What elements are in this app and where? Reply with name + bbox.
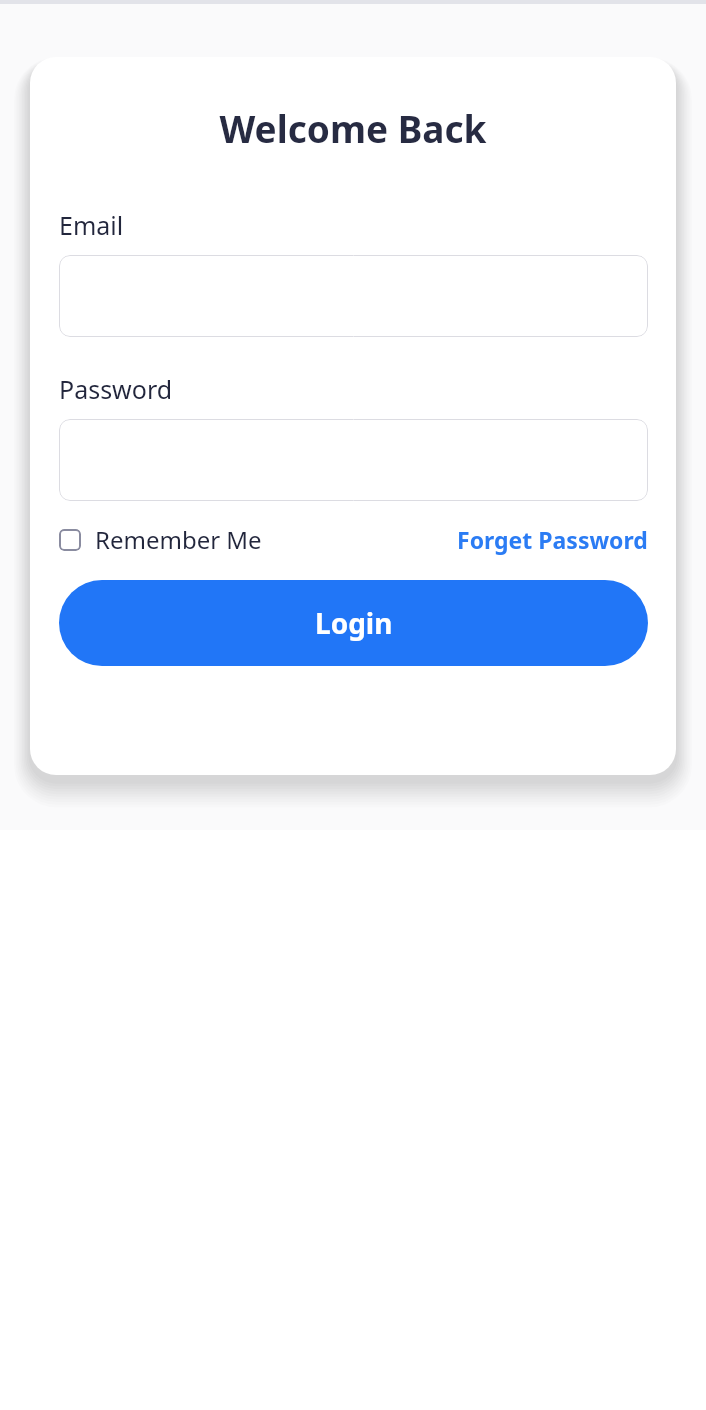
staticText: Email [59, 208, 124, 242]
button[interactable]: Login [59, 580, 648, 666]
button[interactable]: Remember Me checkbox [59, 523, 262, 556]
staticText: Password [59, 372, 173, 406]
button[interactable]: Text input [59, 419, 648, 501]
staticText: Login [315, 604, 393, 642]
button[interactable]: Text input [59, 255, 648, 337]
staticText: Remember Me [95, 523, 262, 556]
other: Remember Me checkbox [59, 529, 81, 551]
button[interactable]: Forget Password [457, 524, 648, 555]
staticText: Welcome Back [30, 103, 676, 153]
